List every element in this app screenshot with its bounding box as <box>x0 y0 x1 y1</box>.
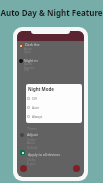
staticText: Always <box>32 115 43 119</box>
staticText: Sunse <box>24 65 35 70</box>
staticText: Auto <box>32 106 40 110</box>
staticText: Color <box>27 137 37 142</box>
button[interactable]: Always <box>27 112 82 121</box>
staticText: Daily <box>27 157 36 162</box>
staticText: Sched <box>27 145 38 150</box>
button[interactable] <box>19 44 23 48</box>
staticText: Night m <box>24 58 38 63</box>
button[interactable]: Secondary action <box>73 165 80 172</box>
staticText: Night Mode <box>28 86 54 92</box>
button[interactable]: Primary action <box>20 165 27 172</box>
staticText: 6 pm <box>27 161 36 166</box>
button[interactable]: Auto <box>27 103 82 112</box>
staticText: Dark the <box>25 42 40 47</box>
staticText: Apply to all devices <box>28 152 61 157</box>
staticText: Syst <box>24 49 31 54</box>
staticText: Auto <box>24 61 32 66</box>
staticText: Them <box>27 126 37 131</box>
button[interactable]: Off <box>27 94 82 103</box>
staticText: Auto <box>27 140 35 145</box>
staticText: Auto <box>24 46 32 51</box>
staticText: Adjust <box>27 132 38 137</box>
staticText: On <box>24 67 30 72</box>
staticText: Off <box>32 97 37 101</box>
staticText: Auto Day & Night Feature <box>0 7 103 18</box>
